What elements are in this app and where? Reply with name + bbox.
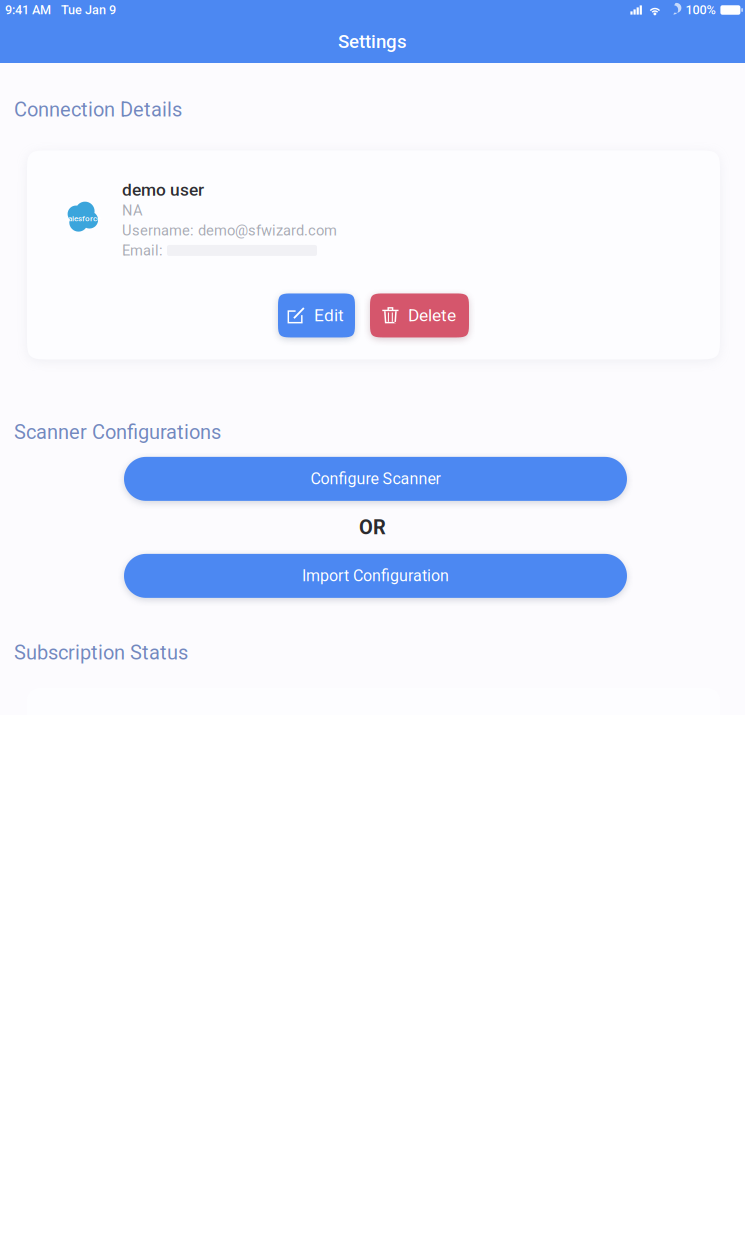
button[interactable]: Import Configuration bbox=[124, 554, 627, 598]
staticText: Username: demo@sfwizard.com bbox=[122, 222, 337, 239]
staticText: Tue Jan 9 bbox=[61, 3, 116, 17]
staticText: Connection Details bbox=[14, 98, 182, 121]
staticText: 9:41 AM bbox=[5, 3, 51, 17]
staticText: Edit bbox=[314, 305, 344, 326]
staticText: OR bbox=[359, 516, 386, 539]
staticText: Configure Scanner bbox=[310, 469, 440, 488]
staticText: 100% bbox=[685, 3, 715, 17]
staticText: NA bbox=[122, 202, 143, 219]
staticText: Scanner Configurations bbox=[14, 420, 221, 444]
staticText: salesforce bbox=[64, 214, 101, 223]
staticText: Email: bbox=[122, 242, 167, 259]
staticText: Subscription Status bbox=[14, 641, 188, 664]
staticText: Import Configuration bbox=[302, 566, 449, 585]
staticText: Delete bbox=[408, 305, 456, 326]
staticText: demo user bbox=[122, 180, 204, 200]
button[interactable]: Edit bbox=[278, 293, 355, 337]
button[interactable]: Delete bbox=[370, 293, 469, 337]
staticText: Settings bbox=[338, 31, 407, 52]
button[interactable]: Configure Scanner bbox=[124, 457, 627, 501]
